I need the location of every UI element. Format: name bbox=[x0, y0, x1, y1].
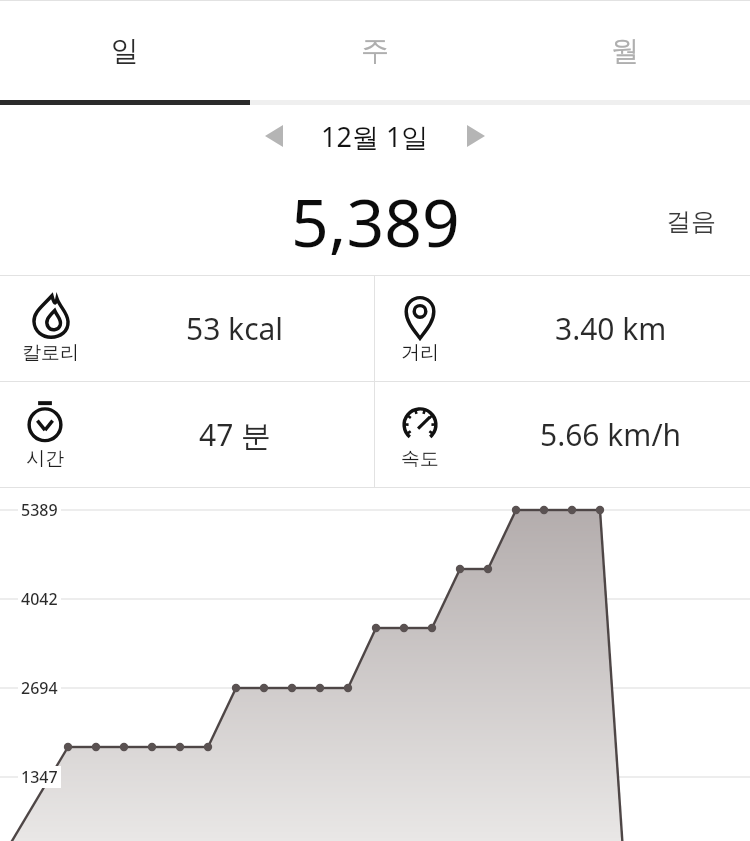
staticText: 4042 bbox=[21, 588, 58, 610]
staticText: 주 bbox=[361, 33, 389, 68]
staticText: 5.66 km/h bbox=[540, 414, 682, 455]
staticText: 2694 bbox=[21, 677, 58, 699]
staticText: 12월 1일 bbox=[321, 118, 429, 155]
staticText: 5389 bbox=[21, 499, 58, 521]
button[interactable]: 일 bbox=[0, 1, 250, 100]
staticText: 3.40 km bbox=[555, 308, 667, 349]
button[interactable]: 거리 bbox=[375, 276, 750, 381]
button[interactable]: Previous day bbox=[251, 113, 297, 159]
button[interactable]: Next day bbox=[453, 113, 499, 159]
staticText: 47 분 bbox=[199, 414, 272, 455]
button[interactable]: 월 bbox=[500, 1, 750, 100]
staticText: 일 bbox=[111, 33, 139, 68]
staticText: 월 bbox=[611, 33, 639, 68]
staticText: 53 kcal bbox=[186, 308, 284, 349]
staticText: 속도 bbox=[401, 447, 439, 471]
button[interactable]: 시간 bbox=[0, 382, 374, 487]
staticText: 1347 bbox=[21, 766, 58, 788]
staticText: 칼로리 bbox=[22, 341, 79, 365]
button[interactable]: 속도 bbox=[375, 382, 750, 487]
button[interactable]: 주 bbox=[250, 1, 500, 100]
staticText: 거리 bbox=[401, 341, 439, 365]
staticText: 시간 bbox=[26, 447, 64, 471]
staticText: 걸음 bbox=[666, 206, 716, 237]
button[interactable]: 칼로리 bbox=[0, 276, 374, 381]
staticText: 5,389 bbox=[291, 176, 460, 266]
